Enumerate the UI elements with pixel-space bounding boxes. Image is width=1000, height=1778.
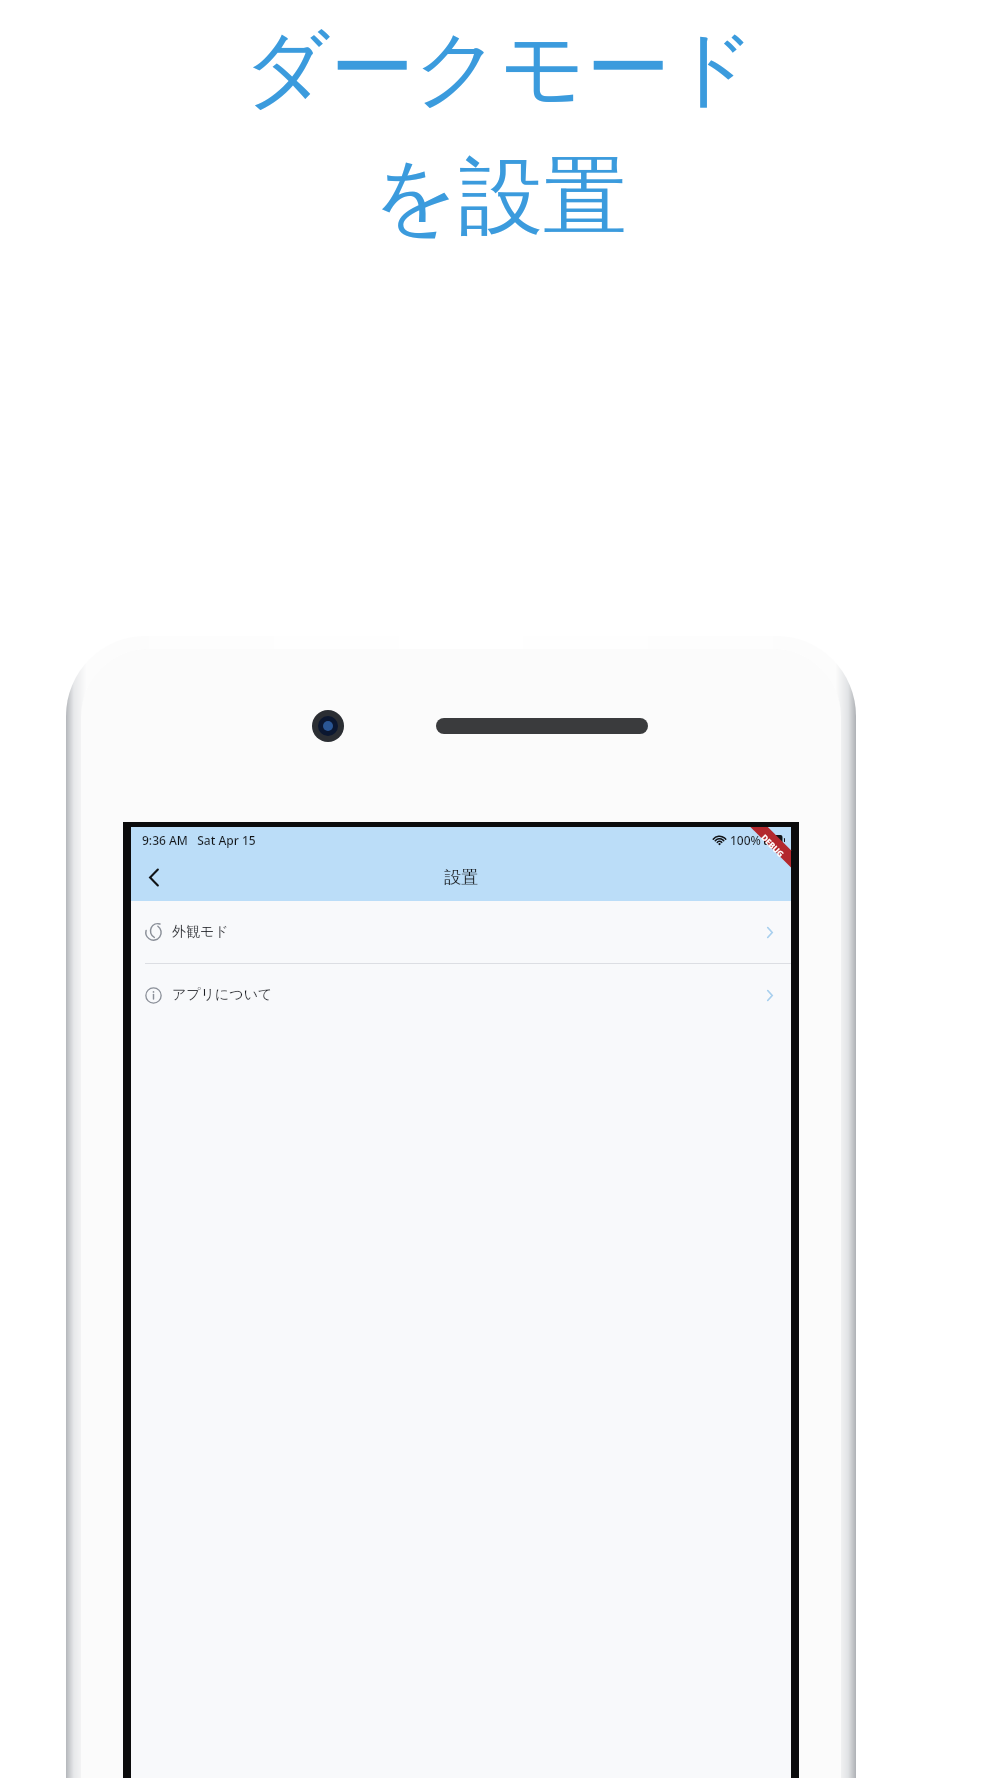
staticText: ダークモード [244,16,756,122]
staticText: を設置 [373,144,627,250]
button[interactable]: 外観モド [131,901,791,963]
staticText: DEBUG [759,832,787,859]
staticText: 9:36 AM Sat Apr 15 [142,832,256,848]
staticText: 外観モド [172,923,229,941]
button[interactable]: Back [131,854,177,900]
staticText: 100% [730,832,761,848]
staticText: 設置 [444,867,478,888]
staticText: アプリについて [172,986,273,1004]
button[interactable]: アプリについて [131,964,791,1026]
